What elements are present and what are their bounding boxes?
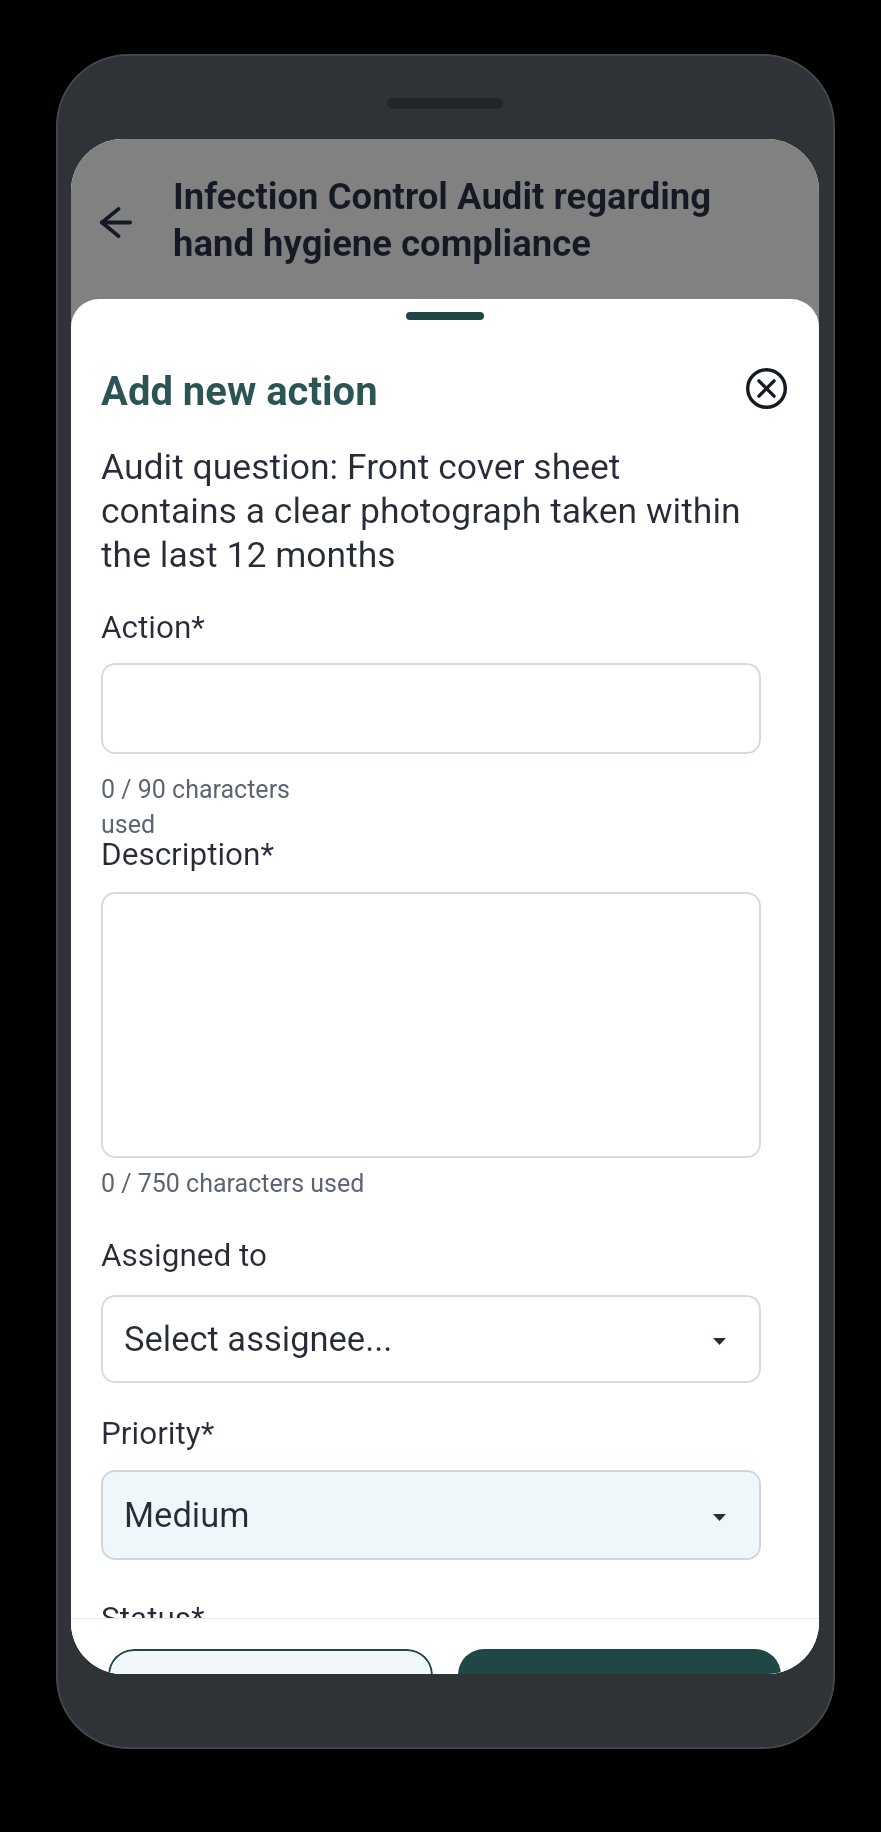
button[interactable] xyxy=(101,892,761,1158)
button[interactable]: Medium xyxy=(101,1470,761,1560)
staticText: Audit question: Front cover sheet contai… xyxy=(101,446,761,576)
button[interactable]: Close xyxy=(742,364,791,413)
button[interactable]: Cancel xyxy=(108,1649,433,1674)
staticText: 0 / 750 characters used xyxy=(101,1169,365,1198)
staticText: Action* xyxy=(101,609,205,646)
staticText: 0 / 90 characters used xyxy=(101,775,301,839)
staticText: Medium xyxy=(124,1495,250,1535)
staticText: Infection Control Audit regarding hand h… xyxy=(173,175,718,265)
staticText: Description* xyxy=(101,836,275,873)
staticText: Assigned to xyxy=(101,1237,268,1274)
button[interactable]: Save xyxy=(458,1649,781,1674)
button[interactable] xyxy=(101,663,761,754)
button[interactable]: Back xyxy=(72,178,160,266)
staticText: Status* xyxy=(101,1600,205,1637)
button[interactable]: Select assignee... xyxy=(101,1295,761,1383)
staticText: Priority* xyxy=(101,1415,215,1452)
staticText: Select assignee... xyxy=(124,1319,393,1359)
staticText: Add new action xyxy=(101,368,378,415)
